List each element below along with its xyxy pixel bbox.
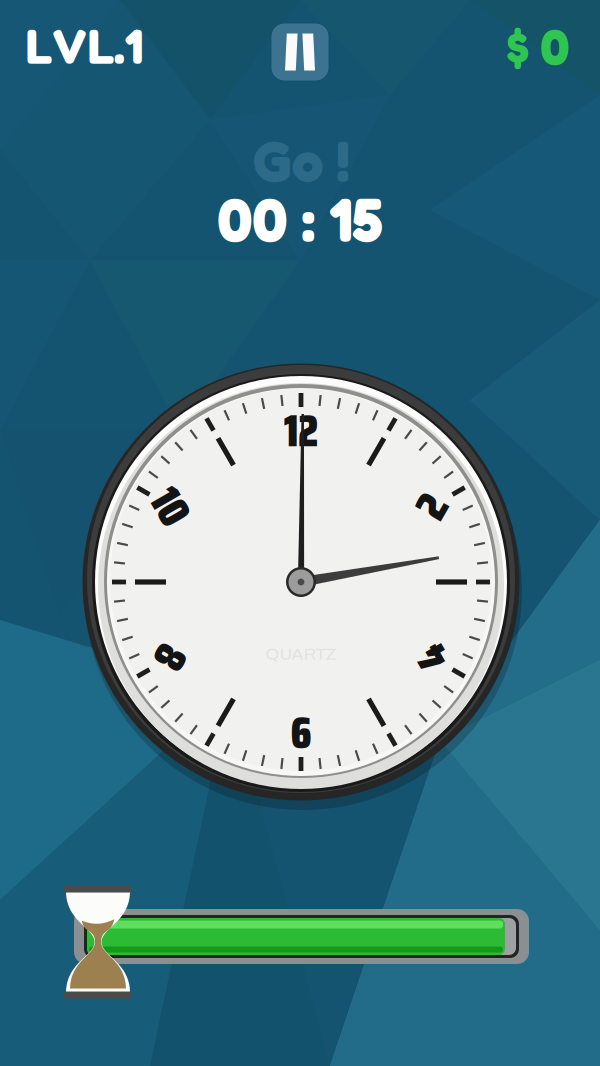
staticText: Go !	[252, 126, 350, 194]
staticText: 6	[290, 698, 311, 768]
staticText: QUARTZ	[265, 645, 336, 663]
staticText: 8	[159, 623, 181, 692]
staticText: LVL.1	[25, 17, 143, 75]
staticText: 2	[422, 472, 442, 541]
staticText: 4	[421, 623, 442, 692]
staticText: 10	[153, 472, 188, 541]
button[interactable]: Pause	[271, 23, 328, 80]
staticText: 12	[284, 396, 318, 466]
staticText: 00 : 15	[217, 181, 382, 255]
staticText: $ 0	[506, 15, 569, 77]
